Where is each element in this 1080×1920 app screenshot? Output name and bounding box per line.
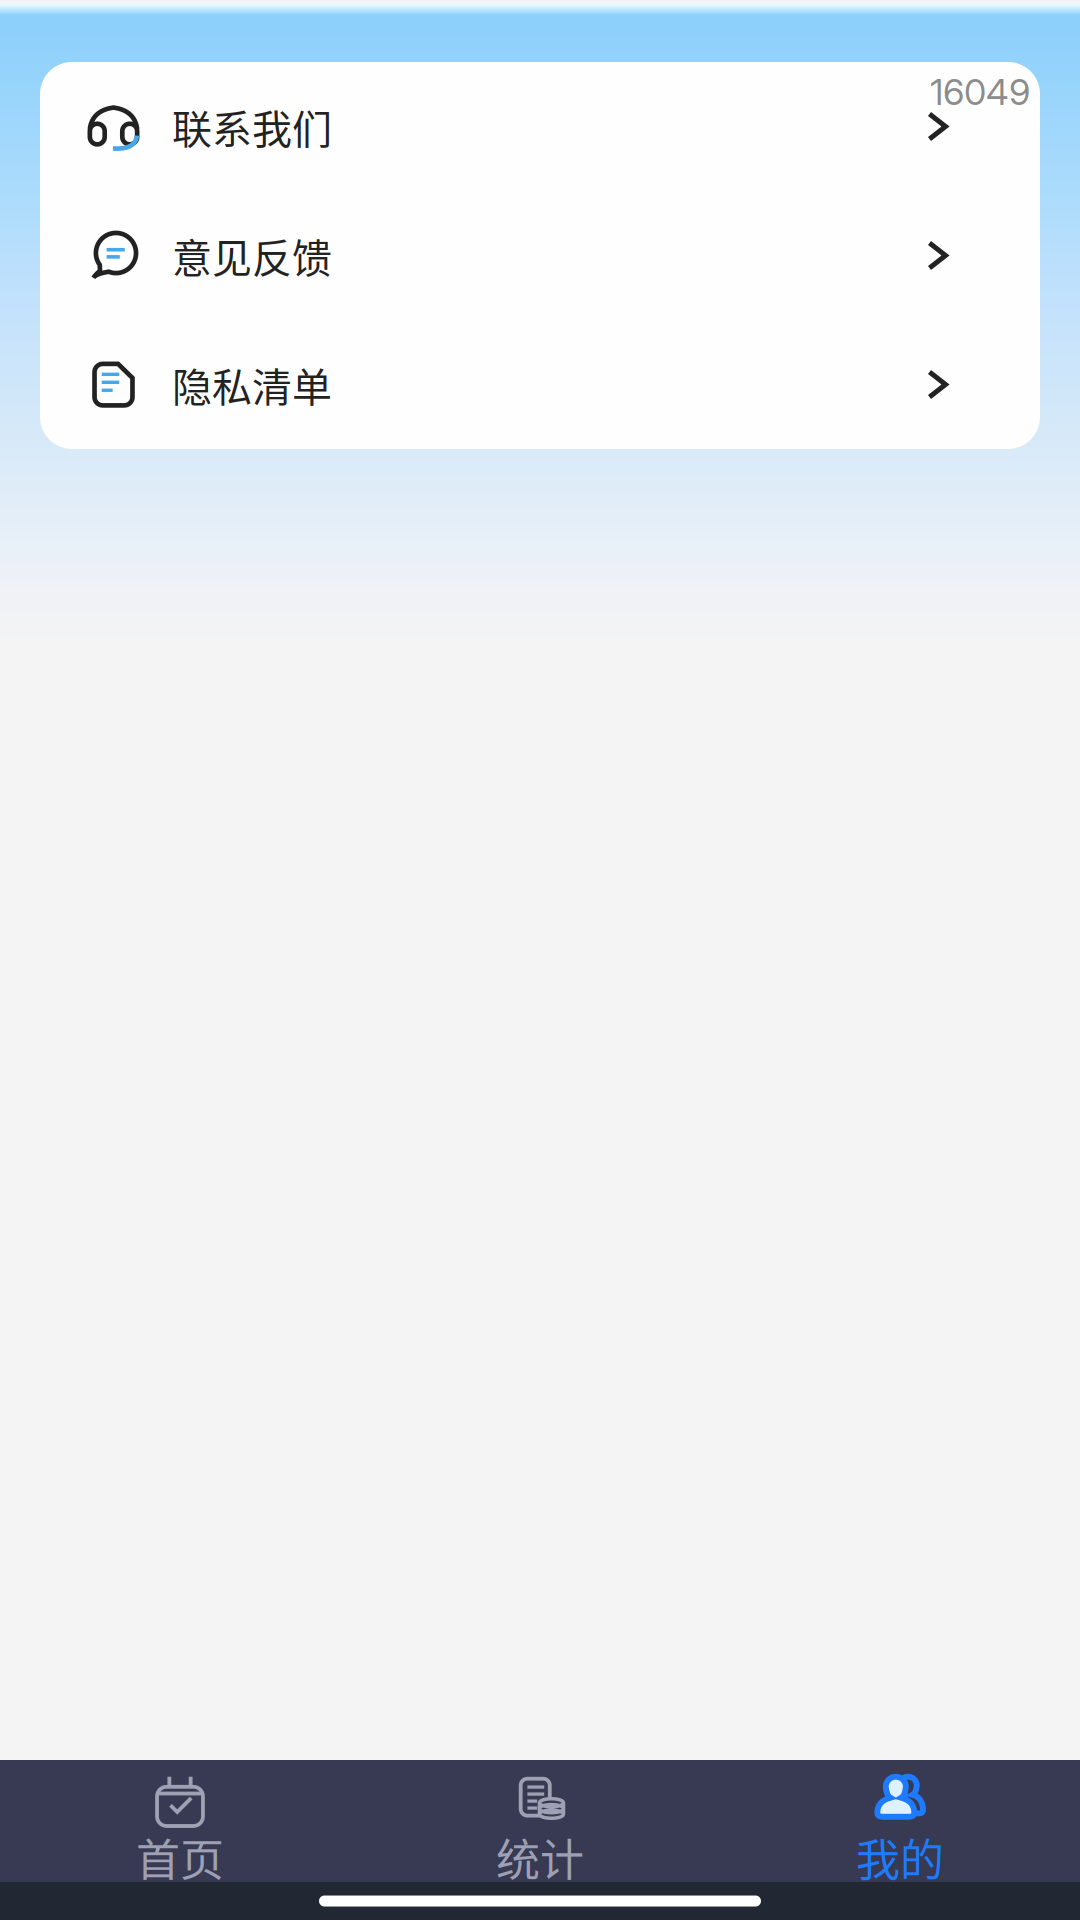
button[interactable]: 首页 <box>0 1760 360 1882</box>
button[interactable]: 意见反馈 <box>40 191 1040 320</box>
button[interactable]: 我的 <box>720 1760 1080 1882</box>
button[interactable]: 联系我们 <box>40 62 1040 191</box>
staticText: 意见反馈 <box>172 226 332 284</box>
staticText: 首页 <box>136 1825 224 1889</box>
staticText: 16049 <box>930 70 1030 114</box>
button[interactable]: 统计 <box>360 1760 720 1882</box>
staticText: 联系我们 <box>172 97 332 155</box>
staticText: 统计 <box>496 1825 584 1889</box>
staticText: 隐私清单 <box>172 355 332 413</box>
staticText: 我的 <box>856 1825 944 1889</box>
button[interactable]: 隐私清单 <box>40 320 1040 449</box>
